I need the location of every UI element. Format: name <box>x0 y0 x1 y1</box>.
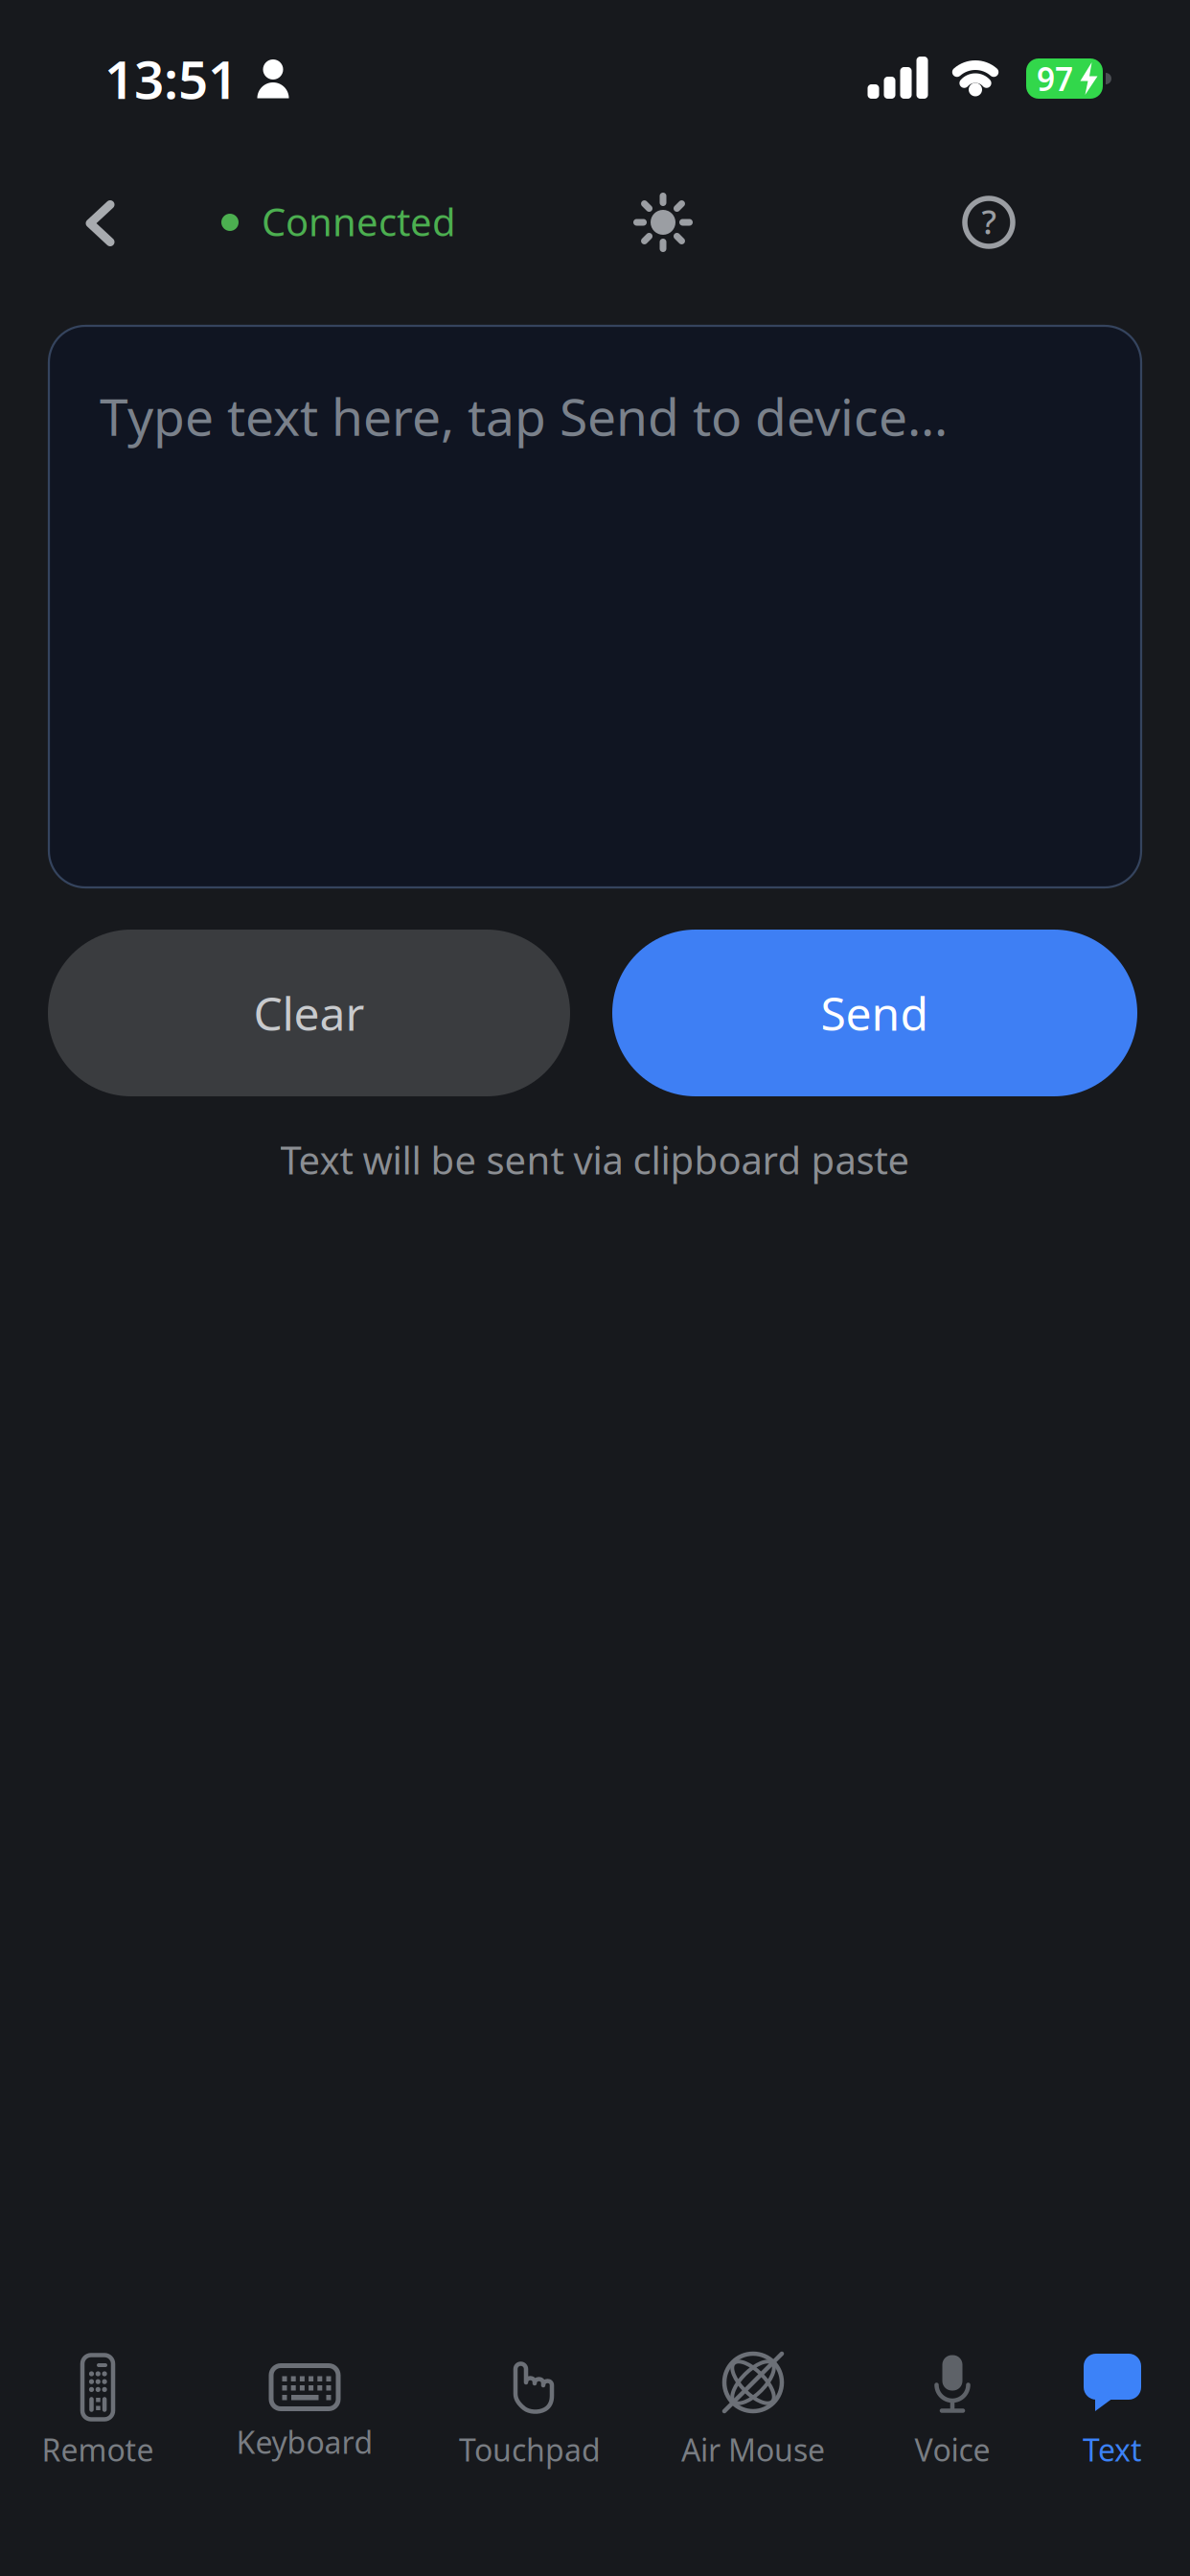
button[interactable]: Touchpad <box>434 2344 626 2488</box>
staticText: Keyboard <box>236 2422 373 2462</box>
textField[interactable]: Type text here, tap Send to device... <box>49 326 1141 887</box>
staticText: Text <box>1083 2429 1142 2470</box>
staticText: ? <box>982 199 996 243</box>
staticText: 13:51 <box>104 44 238 113</box>
button[interactable]: Send <box>612 930 1137 1096</box>
button[interactable]: Clear <box>48 930 570 1096</box>
button[interactable]: Text <box>1017 2344 1190 2488</box>
button[interactable]: Air Mouse <box>657 2344 849 2488</box>
staticText: Type text here, tap Send to device... <box>100 382 948 450</box>
staticText: 97 <box>1037 57 1073 100</box>
staticText: Air Mouse <box>681 2429 825 2470</box>
staticText: Send <box>821 982 929 1043</box>
staticText: Clear <box>253 982 365 1043</box>
button[interactable]: Brightness <box>634 194 692 251</box>
button[interactable]: Voice <box>857 2344 1048 2488</box>
button[interactable]: Back <box>67 190 134 257</box>
staticText: Voice <box>915 2429 990 2470</box>
staticText: Connected <box>262 196 456 247</box>
button[interactable]: Help <box>962 195 1016 249</box>
button[interactable]: Remote <box>2 2344 194 2488</box>
staticText: Remote <box>42 2429 154 2470</box>
staticText: Text will be sent via clipboard paste <box>280 1134 910 1185</box>
button[interactable]: Keyboard <box>209 2344 400 2488</box>
staticText: Touchpad <box>459 2429 601 2470</box>
